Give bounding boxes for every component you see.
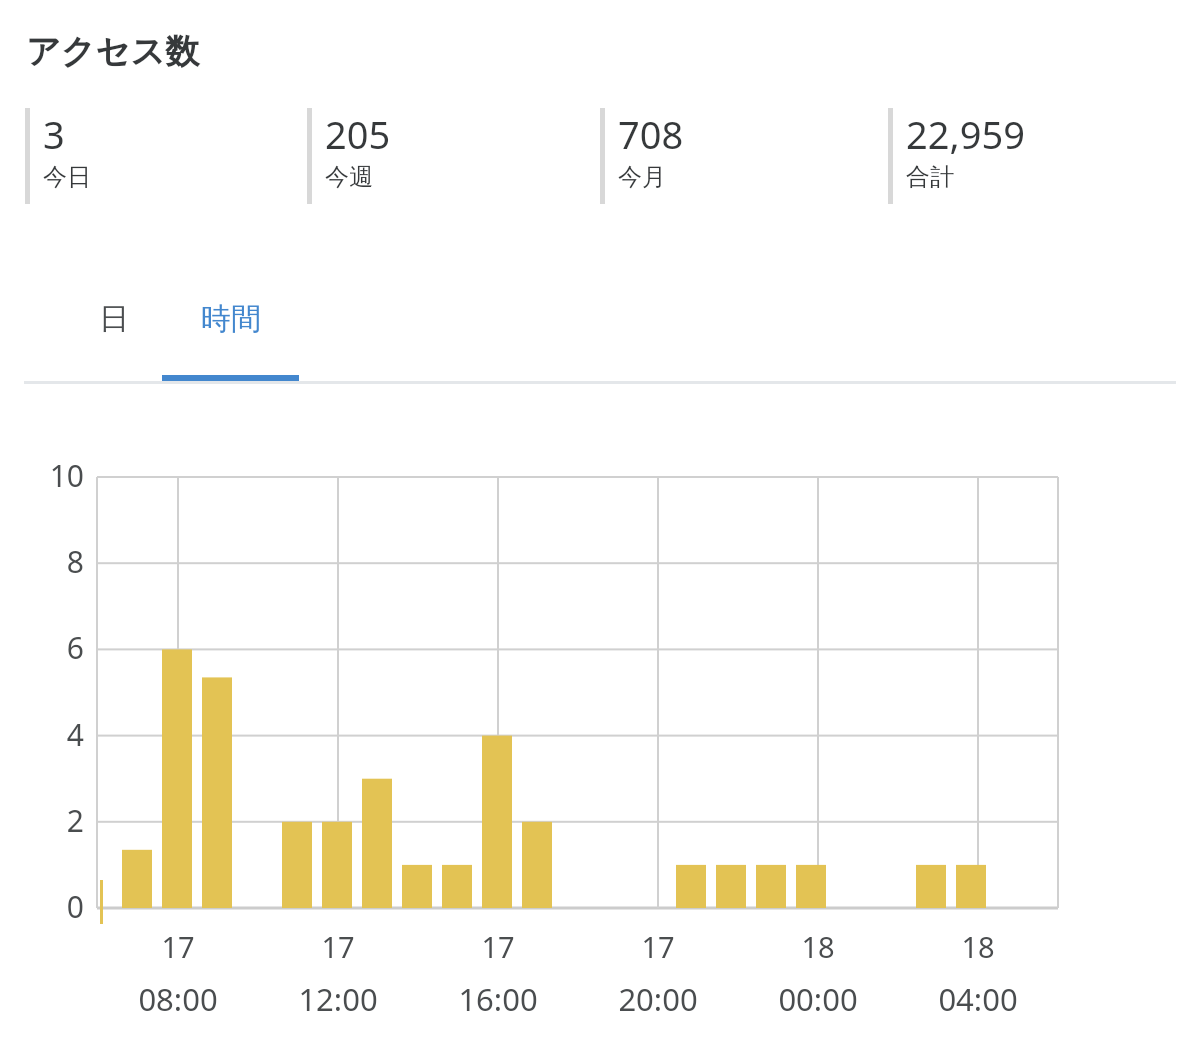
button[interactable]: 708: [600, 108, 870, 204]
button[interactable]: 日: [46, 288, 181, 383]
staticText: アクセス数: [26, 30, 200, 73]
staticText: 04:00: [938, 978, 1018, 1020]
staticText: 708: [618, 108, 684, 160]
staticText: 6: [66, 627, 84, 668]
staticText: 日: [99, 300, 129, 338]
staticText: 今週: [325, 162, 373, 192]
staticText: 17: [161, 927, 195, 966]
staticText: 18: [801, 927, 835, 966]
staticText: 合計: [906, 162, 954, 192]
staticText: 今日: [43, 162, 91, 192]
staticText: 22,959: [906, 108, 1025, 160]
staticText: 3: [43, 108, 65, 160]
staticText: 17: [481, 927, 515, 966]
staticText: 0: [66, 886, 84, 927]
staticText: 時間: [201, 300, 261, 338]
staticText: 2: [66, 800, 84, 841]
staticText: 4: [66, 714, 84, 755]
staticText: 20:00: [618, 978, 698, 1020]
staticText: 17: [321, 927, 355, 966]
staticText: 10: [49, 455, 84, 496]
staticText: 8: [66, 541, 84, 582]
staticText: 205: [325, 108, 391, 160]
button[interactable]: 3: [25, 108, 295, 204]
button[interactable]: 205: [307, 108, 577, 204]
staticText: 00:00: [778, 978, 858, 1020]
staticText: 今月: [618, 162, 666, 192]
staticText: 17: [641, 927, 675, 966]
staticText: 08:00: [138, 978, 218, 1020]
button[interactable]: 時間: [162, 288, 299, 383]
button[interactable]: アクセス数の時間別グラフ: [97, 477, 1058, 908]
staticText: 16:00: [458, 978, 538, 1020]
button[interactable]: 22,959: [888, 108, 1158, 204]
staticText: 12:00: [298, 978, 378, 1020]
staticText: 18: [961, 927, 995, 966]
